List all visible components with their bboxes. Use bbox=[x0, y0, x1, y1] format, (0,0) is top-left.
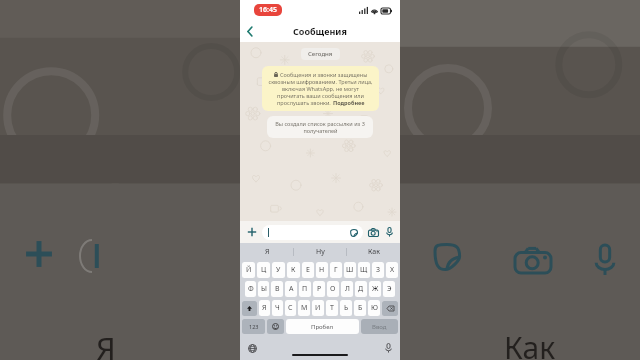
staticText: Я bbox=[262, 303, 267, 313]
button[interactable]: П bbox=[299, 281, 311, 297]
button[interactable]: Щ bbox=[358, 262, 370, 278]
button[interactable]: Й bbox=[242, 262, 255, 278]
button[interactable]: Т bbox=[326, 300, 338, 316]
staticText: сквозным шифрованием. Третьи лица, bbox=[268, 78, 373, 85]
staticText: Ч bbox=[275, 303, 280, 313]
button[interactable]: Ю bbox=[368, 300, 380, 316]
button[interactable]: Как bbox=[347, 243, 400, 260]
button[interactable]: А bbox=[285, 281, 297, 297]
staticText: П bbox=[302, 284, 308, 294]
button[interactable]: И bbox=[312, 300, 324, 316]
button[interactable]: Цифры bbox=[242, 319, 265, 334]
staticText: Я bbox=[265, 247, 270, 257]
button[interactable]: Я bbox=[240, 243, 294, 260]
button[interactable]: Ну bbox=[294, 243, 347, 260]
staticText: О bbox=[330, 284, 336, 294]
staticText: У bbox=[276, 265, 281, 275]
button[interactable]: Ы bbox=[258, 281, 269, 297]
button[interactable]: Я bbox=[259, 300, 270, 316]
staticText: Ж bbox=[372, 284, 379, 294]
staticText: Л bbox=[345, 284, 350, 294]
button[interactable]: О bbox=[327, 281, 339, 297]
button[interactable]: Язык bbox=[246, 342, 258, 354]
staticText: Ввод bbox=[372, 323, 387, 331]
button[interactable]: Э bbox=[383, 281, 395, 297]
button[interactable]: Н bbox=[316, 262, 328, 278]
button[interactable]: Удалить bbox=[382, 301, 398, 316]
staticText: Г bbox=[334, 265, 338, 275]
staticText: Н bbox=[319, 265, 325, 275]
staticText: Вы создали список рассылки из 3 bbox=[275, 120, 365, 127]
staticText: Э bbox=[387, 284, 392, 294]
staticText: И bbox=[315, 303, 321, 313]
staticText: Ц bbox=[261, 265, 267, 275]
staticText: 123 bbox=[249, 323, 259, 330]
staticText: Д bbox=[358, 284, 364, 294]
button[interactable]: Х bbox=[386, 262, 398, 278]
button[interactable]: В bbox=[271, 281, 283, 297]
staticText: прослушать звонки. bbox=[277, 99, 333, 106]
button[interactable]: Сообщения и звонки защищены bbox=[262, 66, 379, 111]
button[interactable]: Ввод bbox=[361, 319, 398, 334]
staticText: Ы bbox=[261, 284, 267, 294]
button[interactable]: С bbox=[285, 300, 296, 316]
staticText: Как bbox=[504, 327, 556, 360]
staticText: Подробнее bbox=[333, 99, 365, 106]
staticText: Ф bbox=[248, 284, 254, 294]
staticText: 16:45 bbox=[259, 5, 277, 15]
staticText: Т bbox=[330, 303, 334, 313]
button[interactable]: М bbox=[298, 300, 310, 316]
staticText: Я bbox=[96, 327, 116, 360]
staticText: Сегодня bbox=[308, 50, 333, 58]
staticText: С bbox=[288, 303, 293, 313]
staticText: Щ bbox=[360, 265, 368, 275]
button[interactable]: Б bbox=[354, 300, 366, 316]
staticText: включая WhatsApp, не могут bbox=[282, 85, 359, 92]
staticText: Ш bbox=[346, 265, 354, 275]
button[interactable]: Диктовка bbox=[382, 342, 394, 354]
button[interactable]: Стикеры bbox=[349, 228, 359, 238]
button[interactable]: Ь bbox=[340, 300, 352, 316]
button[interactable]: Пробел bbox=[286, 319, 359, 334]
button[interactable]: Ш bbox=[344, 262, 356, 278]
staticText: М bbox=[301, 303, 308, 313]
button[interactable]: Е bbox=[302, 262, 314, 278]
staticText: Б bbox=[358, 303, 363, 313]
staticText: К bbox=[291, 265, 296, 275]
button[interactable]: Голосовое сообщение bbox=[383, 226, 395, 238]
button[interactable]: У bbox=[272, 262, 285, 278]
button[interactable]: Добавить bbox=[245, 225, 259, 239]
staticText: Сообщения и звонки защищены bbox=[280, 71, 368, 78]
staticText: Сообщения bbox=[293, 25, 347, 37]
staticText: Ю bbox=[371, 303, 378, 313]
button[interactable]: Ж bbox=[369, 281, 381, 297]
staticText: получателей bbox=[303, 127, 338, 134]
staticText: А bbox=[289, 284, 294, 294]
button[interactable]: Г bbox=[330, 262, 342, 278]
button[interactable]: Камера bbox=[367, 226, 380, 239]
staticText: прочитать ваши сообщения или bbox=[277, 92, 364, 99]
staticText: Й bbox=[246, 265, 252, 275]
button[interactable]: К bbox=[287, 262, 300, 278]
staticText: Х bbox=[390, 265, 395, 275]
button[interactable]: Эмодзи bbox=[267, 319, 284, 334]
button[interactable]: Д bbox=[355, 281, 367, 297]
button[interactable]: Shift bbox=[242, 301, 257, 316]
button[interactable]: Стикеры bbox=[262, 225, 363, 240]
staticText: Е bbox=[306, 265, 310, 275]
staticText: Пробел bbox=[311, 323, 334, 331]
staticText: З bbox=[376, 265, 381, 275]
button[interactable]: Ч bbox=[272, 300, 283, 316]
button[interactable]: Р bbox=[313, 281, 325, 297]
staticText: Ну bbox=[316, 247, 325, 257]
staticText: В bbox=[275, 284, 280, 294]
staticText: Как bbox=[368, 247, 380, 257]
button[interactable]: З bbox=[372, 262, 384, 278]
staticText: Р bbox=[317, 284, 322, 294]
button[interactable]: Ф bbox=[245, 281, 256, 297]
button[interactable]: Ц bbox=[257, 262, 270, 278]
staticText: Ь bbox=[344, 303, 349, 313]
button[interactable]: Л bbox=[341, 281, 353, 297]
button[interactable]: Назад bbox=[240, 21, 260, 41]
